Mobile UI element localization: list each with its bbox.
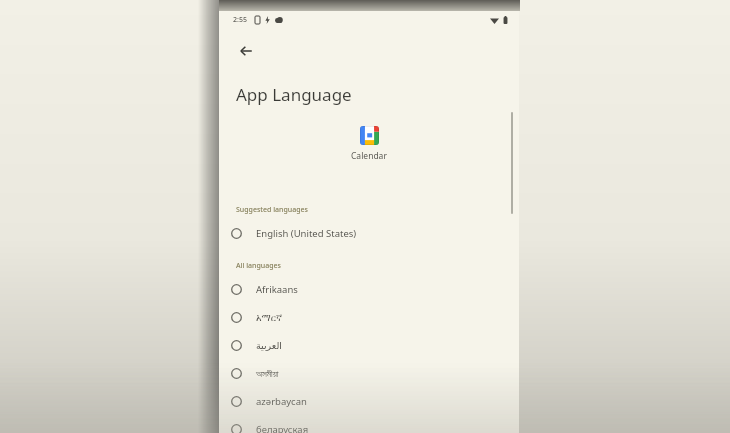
staticText: Afrikaans: [256, 283, 298, 296]
staticText: беларуская: [256, 423, 309, 433]
button[interactable]: azərbaycan: [219, 387, 519, 415]
staticText: All languages: [236, 261, 281, 271]
staticText: English (United States): [256, 227, 357, 240]
staticText: 2:55: [233, 15, 247, 25]
button[interactable]: العربية: [219, 331, 519, 359]
button[interactable]: беларуская: [219, 415, 519, 433]
staticText: অসমীয়া: [256, 369, 279, 378]
staticText: العربية: [256, 340, 282, 351]
button[interactable]: Back: [227, 32, 265, 70]
staticText: አማርኛ: [256, 313, 283, 322]
button[interactable]: አማርኛ: [219, 303, 519, 331]
staticText: Suggested languages: [236, 205, 308, 215]
button[interactable]: English (United States): [219, 219, 519, 247]
staticText: Calendar: [351, 150, 387, 162]
button[interactable]: অসমীয়া: [219, 359, 519, 387]
staticText: azərbaycan: [256, 395, 307, 408]
button[interactable]: Calendar app icon: [360, 126, 379, 145]
staticText: App Language: [236, 83, 352, 106]
button[interactable]: Afrikaans: [219, 275, 519, 303]
